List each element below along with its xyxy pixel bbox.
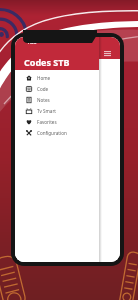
staticText: Tv Smart (37, 108, 56, 114)
staticText: Notes (37, 97, 50, 103)
staticText: Favorites (37, 119, 57, 125)
button[interactable]: Configuration (15, 127, 99, 138)
button[interactable]: Tv Smart (15, 105, 99, 116)
button[interactable]: Code (15, 83, 99, 94)
staticText: Codes STB (24, 56, 70, 68)
button[interactable]: Favorites (15, 116, 99, 127)
staticText: Code (37, 86, 49, 92)
staticText: 1:36 (27, 39, 37, 46)
button[interactable]: Notes (15, 94, 99, 105)
staticText: Home (37, 75, 51, 81)
button[interactable]: Home (15, 72, 99, 83)
other: Status icons (104, 51, 111, 56)
staticText: Configuration (37, 130, 67, 136)
